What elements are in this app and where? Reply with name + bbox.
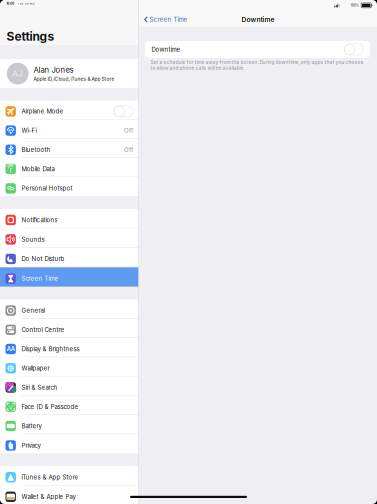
button[interactable]: Wi-Fi — [0, 120, 138, 139]
staticText: Battery — [21, 422, 41, 430]
staticText: Personal Hotspot — [21, 185, 72, 192]
staticText: Privacy — [21, 442, 40, 449]
staticText: Display & Brightness — [21, 345, 79, 353]
button[interactable]: Control Centre — [0, 319, 138, 338]
staticText: Sounds — [21, 236, 44, 243]
staticText: Tue 28 Feb — [18, 2, 35, 5]
staticText: Downtime — [241, 15, 274, 24]
staticText: Siri & Search — [21, 384, 57, 391]
staticText: Wallpaper — [21, 365, 49, 372]
staticText: iTunes & App Store — [21, 473, 78, 481]
staticText: Screen Time — [21, 275, 58, 282]
staticText: AJ — [12, 69, 23, 78]
button[interactable]: Notifications — [0, 209, 138, 228]
staticText: AA — [7, 346, 15, 352]
button[interactable]: Personal Hotspot — [0, 177, 138, 196]
button[interactable]: Mobile Data — [0, 158, 138, 177]
staticText: Bluetooth — [21, 146, 50, 153]
button[interactable]: Wallet & Apple Pay — [0, 485, 138, 504]
staticText: Alan Jones — [34, 65, 74, 75]
staticText: Wallet & Apple Pay — [21, 493, 75, 500]
button[interactable]: General — [0, 300, 138, 319]
staticText: Off — [124, 146, 133, 153]
staticText: 100% — [351, 3, 359, 7]
staticText: Apple ID, iCloud, iTunes & App Store — [34, 76, 115, 82]
button[interactable]: Airplane Mode — [0, 100, 138, 120]
staticText: Notifications — [21, 216, 57, 224]
button[interactable]: Face ID & Passcode — [0, 396, 138, 415]
button[interactable]: Privacy — [0, 434, 138, 453]
button[interactable]: Downtime — [139, 41, 377, 58]
staticText: Settings — [7, 29, 55, 44]
button[interactable]: Do Not Disturb — [0, 248, 138, 267]
button[interactable]: Sounds — [0, 228, 138, 248]
staticText: Wi-Fi — [21, 127, 36, 134]
staticText: Do Not Disturb — [21, 255, 64, 262]
staticText: Control Centre — [21, 326, 64, 333]
button[interactable]: Siri & Search — [0, 377, 138, 396]
staticText: 10:00 — [6, 2, 14, 5]
button[interactable]: iTunes & App Store — [0, 466, 138, 485]
staticText: Set a schedule for time away from the sc… — [150, 59, 363, 71]
staticText: Airplane Mode — [21, 108, 63, 115]
button[interactable]: Screen Time — [139, 12, 192, 27]
staticText: Downtime — [151, 46, 180, 53]
staticText: Off — [124, 127, 133, 134]
button[interactable]: Bluetooth — [0, 139, 138, 158]
button[interactable]: Screen Time — [0, 267, 138, 287]
staticText: General — [21, 307, 44, 314]
staticText: Mobile Data — [21, 165, 54, 173]
button[interactable]: Battery — [0, 415, 138, 434]
button[interactable]: AJ — [0, 59, 138, 88]
staticText: Screen Time — [150, 16, 188, 23]
button[interactable]: Wallpaper — [0, 357, 138, 376]
button[interactable]: AA — [0, 338, 138, 357]
staticText: Face ID & Passcode — [21, 403, 78, 410]
